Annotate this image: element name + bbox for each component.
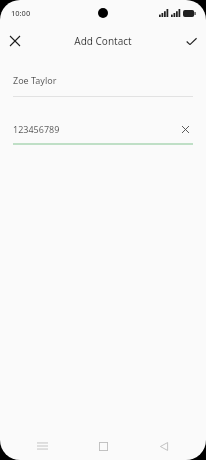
button[interactable]: Recent apps [29,433,55,459]
button[interactable]: 123456789 [13,119,193,145]
button[interactable]: Save [176,26,206,56]
button[interactable]: Clear text [177,121,193,137]
staticText: Zoe Taylor [13,74,57,86]
staticText: Add Contact [74,34,132,48]
button[interactable]: Back [151,433,177,459]
button[interactable]: Close [0,26,30,56]
staticText: 10:00 [11,8,31,18]
staticText: 123456789 [13,123,60,135]
button[interactable]: Home [90,433,116,459]
button[interactable]: Zoe Taylor [13,70,193,97]
